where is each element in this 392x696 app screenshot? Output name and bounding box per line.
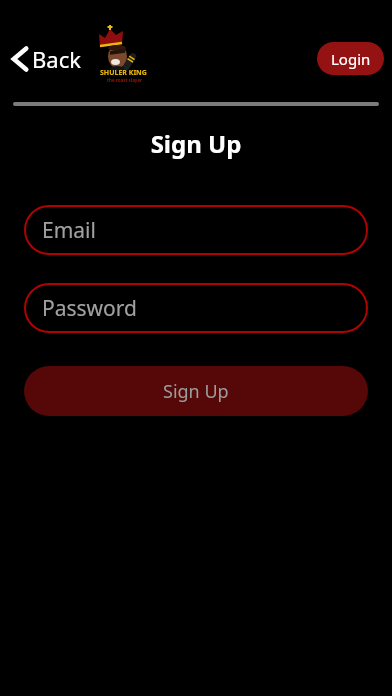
button[interactable]: Password (24, 283, 368, 333)
button[interactable]: Login (317, 42, 384, 75)
staticText: Sign Up (163, 379, 229, 404)
staticText: Back (32, 44, 81, 74)
staticText: Password (42, 294, 137, 323)
staticText: the roast slayer (107, 77, 143, 83)
button[interactable]: Sign Up (24, 366, 368, 416)
staticText: SHULER KING (100, 68, 147, 78)
button[interactable]: Email (24, 205, 368, 255)
staticText: Email (42, 216, 96, 245)
staticText: Sign Up (0, 127, 392, 160)
button[interactable]: Back (8, 40, 85, 78)
staticText: Login (331, 49, 371, 69)
